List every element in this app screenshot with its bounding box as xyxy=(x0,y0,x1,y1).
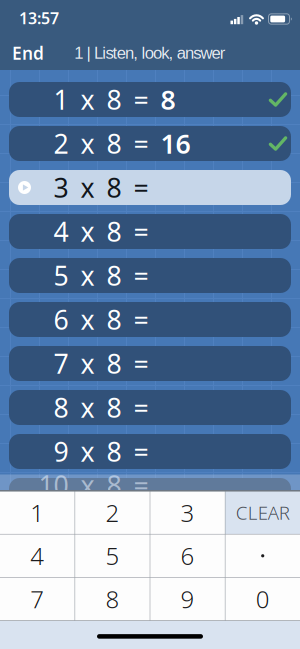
staticText: 3 xyxy=(181,497,195,529)
staticText: 2 xyxy=(53,126,68,161)
staticText: 8 xyxy=(106,214,121,249)
staticText: x xyxy=(80,214,94,249)
staticText: x xyxy=(80,302,94,337)
staticText: CLEAR xyxy=(236,500,290,525)
staticText: = xyxy=(133,346,148,381)
staticText: 8 xyxy=(53,390,68,425)
staticText: = xyxy=(133,258,148,293)
staticText: 9 xyxy=(53,434,68,469)
staticText: = xyxy=(133,390,148,425)
staticText: 3 xyxy=(53,170,68,205)
button[interactable]: CLEAR xyxy=(225,491,300,534)
button[interactable]: 2 xyxy=(9,126,291,161)
staticText: = xyxy=(133,170,148,205)
staticText: 8 xyxy=(105,583,119,615)
staticText: 1 xyxy=(30,497,44,529)
staticText: 7 xyxy=(53,346,68,381)
button[interactable]: 4 xyxy=(9,214,291,249)
button[interactable]: 6 xyxy=(9,302,291,337)
staticText: = xyxy=(133,214,148,249)
staticText: = xyxy=(133,434,148,469)
staticText: 1 xyxy=(53,82,68,117)
staticText: 6 xyxy=(53,302,68,337)
staticText: 1 | Listen, look, answer xyxy=(74,44,226,62)
staticText: x xyxy=(80,126,94,161)
button[interactable]: 0 xyxy=(225,578,300,620)
staticText: = xyxy=(133,126,148,161)
button[interactable]: 4 xyxy=(0,534,74,577)
button[interactable]: 3 xyxy=(9,170,291,205)
staticText: 2 xyxy=(105,497,119,529)
staticText: 16 xyxy=(160,126,190,161)
button[interactable]: 7 xyxy=(9,346,291,381)
staticText: x xyxy=(80,258,94,293)
staticText: = xyxy=(133,467,148,502)
staticText: x xyxy=(80,467,94,502)
staticText: x xyxy=(80,434,94,469)
staticText: 8 xyxy=(106,390,121,425)
button[interactable]: 3 xyxy=(150,491,225,534)
staticText: 9 xyxy=(181,583,195,615)
staticText: x xyxy=(80,170,94,205)
button[interactable]: 7 xyxy=(0,578,74,620)
staticText: 8 xyxy=(106,170,121,205)
staticText: 4 xyxy=(53,214,68,249)
staticText: 8 xyxy=(106,82,121,117)
staticText: = xyxy=(133,302,148,337)
staticText: 8 xyxy=(106,126,121,161)
staticText: 8 xyxy=(160,82,175,117)
button[interactable]: 9 xyxy=(150,578,225,620)
staticText: 10 xyxy=(38,467,68,502)
button[interactable]: Decimal point xyxy=(225,534,300,577)
button[interactable]: 8 xyxy=(9,390,291,425)
staticText: = xyxy=(133,82,148,117)
button[interactable]: 10 x 8 = xyxy=(9,478,291,513)
button[interactable]: 1 xyxy=(9,82,291,117)
button[interactable]: 5 xyxy=(9,258,291,293)
staticText: 8 xyxy=(106,302,121,337)
staticText: 0 xyxy=(256,583,270,615)
button[interactable]: 5 xyxy=(75,534,150,577)
button[interactable]: 8 xyxy=(75,578,150,620)
button[interactable]: 9 xyxy=(9,434,291,469)
staticText: 8 xyxy=(106,258,121,293)
button[interactable]: 2 xyxy=(75,491,150,534)
staticText: 8 xyxy=(106,434,121,469)
staticText: 8 xyxy=(106,467,121,502)
button[interactable]: 6 xyxy=(150,534,225,577)
staticText: x xyxy=(80,346,94,381)
staticText: 6 xyxy=(181,540,195,572)
button[interactable]: 1 xyxy=(0,491,74,534)
staticText: End xyxy=(12,41,44,64)
staticText: x xyxy=(80,82,94,117)
staticText: 13:57 xyxy=(19,7,59,29)
staticText: 7 xyxy=(30,583,44,615)
button[interactable]: End xyxy=(0,41,44,64)
staticText: 8 xyxy=(106,346,121,381)
staticText: 5 xyxy=(53,258,68,293)
staticText: 5 xyxy=(105,540,119,572)
staticText: 4 xyxy=(30,540,44,572)
staticText: x xyxy=(80,390,94,425)
